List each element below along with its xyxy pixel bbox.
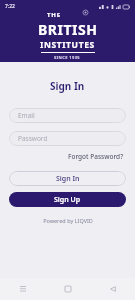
staticText: THE <box>47 11 61 19</box>
staticText: 7:22 <box>5 3 15 10</box>
staticText: SINCE 1935 <box>54 55 81 60</box>
button[interactable]: Forgot Password? <box>66 151 126 162</box>
button[interactable]: Sign In <box>9 171 126 186</box>
button[interactable]: Home <box>45 278 90 300</box>
staticText: Forgot Password? <box>68 152 124 161</box>
button[interactable]: Email <box>9 108 126 123</box>
staticText: Sign In <box>50 79 85 93</box>
staticText: BRITISH <box>38 20 98 39</box>
button[interactable]: Sign Up <box>9 192 126 207</box>
staticText: Powered by LIQVID <box>43 217 93 224</box>
button[interactable]: Back <box>90 278 135 300</box>
staticText: Password <box>18 134 48 143</box>
button[interactable]: Password <box>9 131 126 146</box>
staticText: Email <box>18 111 35 120</box>
button[interactable]: Recent apps <box>0 278 45 300</box>
staticText: INSTITUTES <box>40 39 95 51</box>
staticText: Sign Up <box>54 195 81 205</box>
staticText: Sign In <box>56 174 80 184</box>
